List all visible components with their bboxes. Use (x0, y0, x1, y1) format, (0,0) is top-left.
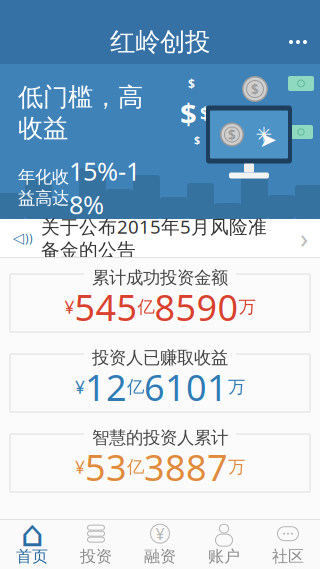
staticText: 智慧的投资人累计 (92, 427, 228, 448)
button[interactable]: 投资 (64, 521, 128, 567)
staticText: $ (188, 76, 195, 92)
staticText: 12 (85, 363, 127, 411)
staticText: 亿 (137, 296, 154, 318)
staticText: 投资人已赚取收益 (92, 347, 228, 368)
button[interactable]: 更多 (276, 20, 320, 64)
staticText: $ (180, 94, 197, 133)
staticText: $ (251, 80, 259, 98)
staticText: ◁ (13, 230, 24, 246)
button[interactable]: 账户 (192, 521, 256, 567)
staticText: 6101 (144, 363, 228, 411)
staticText: 投资 (80, 547, 112, 566)
staticText: 3887 (144, 443, 228, 491)
staticText: 年化收益高达 (18, 166, 69, 209)
staticText: $ (194, 133, 200, 147)
button[interactable]: ¥ (128, 521, 192, 567)
staticText: 红岭创投 (110, 26, 210, 57)
staticText: ⌂ (20, 513, 43, 554)
staticText: ➤ (259, 127, 277, 152)
button[interactable]: ⌂ (0, 521, 64, 567)
staticText: ✳ (255, 123, 272, 146)
staticText: 账户 (208, 547, 240, 566)
staticText: ¥ (75, 455, 85, 478)
staticText: 53 (85, 443, 127, 491)
staticText: 万 (228, 456, 245, 478)
staticText: 545 (74, 283, 137, 331)
button[interactable]: 社区 (256, 521, 320, 567)
staticText: 融资 (144, 547, 176, 566)
staticText: $ (228, 126, 236, 143)
staticText: 社区 (272, 547, 304, 566)
staticText: 万 (238, 296, 255, 318)
staticText: ¥ (155, 523, 164, 544)
staticText: 低门槛，高收益 (18, 82, 143, 144)
staticText: 亿 (127, 456, 144, 478)
staticText: 关于公布2015年5月风险准备金的公告 (41, 214, 267, 262)
staticText: 15%-18% (69, 154, 140, 221)
staticText: $ (200, 102, 210, 125)
staticText: 亿 (127, 376, 144, 398)
staticText: 8590 (154, 283, 238, 331)
staticText: 首页 (16, 547, 48, 566)
button[interactable]: ◁ (0, 219, 320, 258)
staticText: ¥ (64, 295, 74, 318)
staticText: )) (25, 230, 33, 246)
staticText: 累计成功投资金额 (92, 267, 228, 288)
staticText: ¥ (75, 375, 85, 398)
staticText: › (300, 220, 308, 256)
staticText: 万 (228, 376, 245, 398)
